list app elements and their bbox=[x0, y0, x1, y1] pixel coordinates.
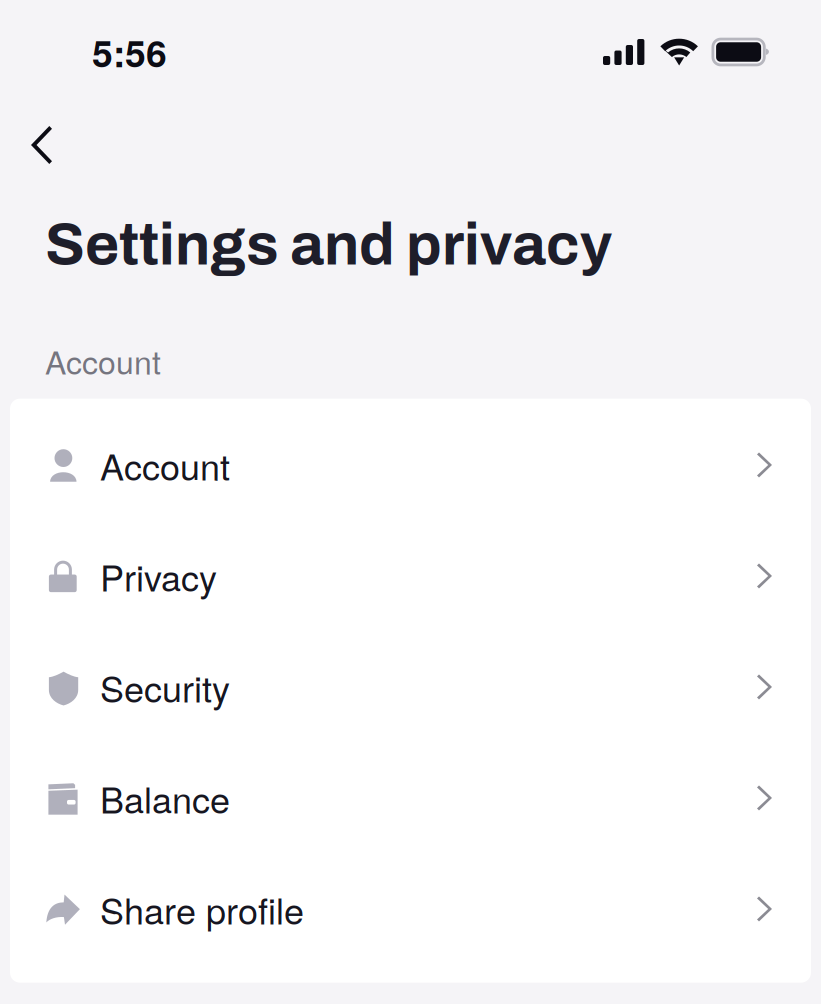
staticText: 5:56 bbox=[92, 25, 167, 79]
button[interactable]: Privacy bbox=[10, 520, 811, 631]
button[interactable]: Back bbox=[0, 115, 78, 175]
staticText: Privacy bbox=[100, 550, 217, 602]
staticText: Settings and privacy bbox=[45, 213, 612, 277]
staticText: Security bbox=[100, 661, 230, 713]
button[interactable]: Share profile bbox=[10, 853, 811, 964]
staticText: Balance bbox=[100, 772, 230, 824]
button[interactable]: Account bbox=[10, 409, 811, 520]
button[interactable]: Security bbox=[10, 631, 811, 742]
staticText: Account bbox=[45, 338, 161, 384]
button[interactable]: Balance bbox=[10, 742, 811, 853]
staticText: Share profile bbox=[100, 883, 304, 935]
staticText: Account bbox=[100, 439, 230, 491]
